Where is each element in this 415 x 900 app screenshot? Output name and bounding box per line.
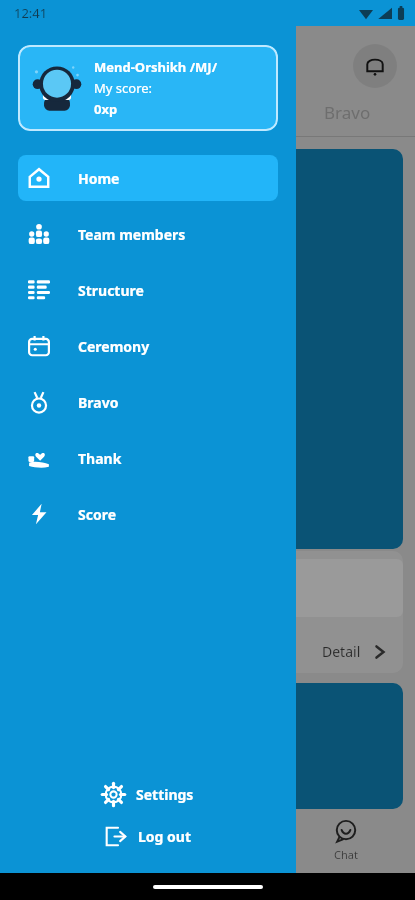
staticText: Bravo xyxy=(78,393,119,412)
staticText: Chat xyxy=(334,847,358,862)
staticText: Bravo xyxy=(324,101,371,124)
staticText: Settings xyxy=(136,785,194,804)
button[interactable]: Home xyxy=(18,155,278,201)
staticText: Log out xyxy=(138,827,191,846)
staticText: Mend-Orshikh /MJ/ xyxy=(94,58,218,76)
staticText: Ceremony xyxy=(78,337,150,356)
button[interactable]: Notifications xyxy=(353,44,397,88)
button[interactable] xyxy=(12,683,403,809)
button[interactable]: Team members xyxy=(18,211,278,257)
button[interactable]: Settings xyxy=(0,773,296,815)
staticText: Thank xyxy=(78,449,122,468)
button[interactable]: board xyxy=(139,809,277,873)
button[interactable]: Ceremony xyxy=(18,323,278,369)
staticText: Home xyxy=(78,169,120,188)
staticText: 0xp xyxy=(94,100,118,118)
staticText: Team members xyxy=(78,225,186,244)
staticText: Structure xyxy=(78,281,144,300)
button[interactable]: Chat xyxy=(277,809,415,873)
button[interactable]: Mend-Orshikh /MJ/ xyxy=(18,45,278,131)
staticText: 12:41 xyxy=(14,4,48,22)
button[interactable]: Structure xyxy=(18,267,278,313)
button[interactable]: Bravo xyxy=(18,379,278,425)
button[interactable] xyxy=(12,149,403,549)
button[interactable]: Detail xyxy=(322,642,387,661)
staticText: Detail xyxy=(322,642,361,661)
button[interactable]: Thank xyxy=(18,435,278,481)
button[interactable]: Score xyxy=(18,491,278,537)
staticText: My score: xyxy=(94,79,153,97)
staticText: Score xyxy=(78,505,117,524)
button[interactable]: Log out xyxy=(0,815,296,857)
